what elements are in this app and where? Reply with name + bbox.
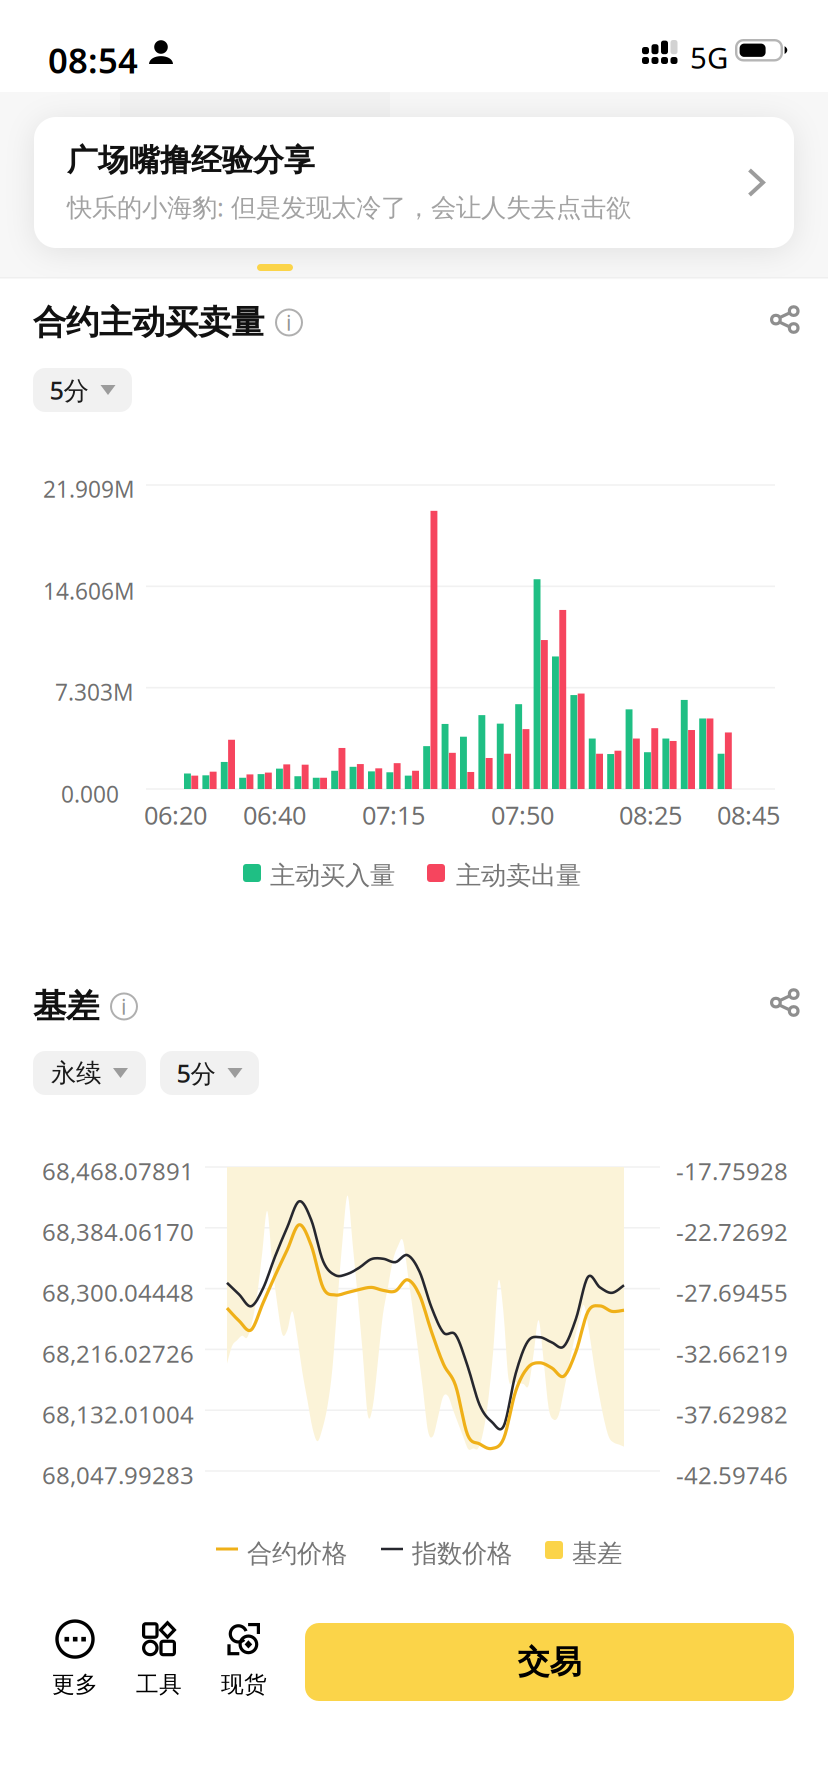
staticText: 主动买入量: [270, 860, 395, 891]
staticText: 68,047.99283: [42, 1459, 194, 1491]
staticText: 5分: [176, 1056, 215, 1090]
button[interactable]: 分享: [771, 988, 800, 1017]
staticText: 快乐的小海豹: 但是发现太冷了，会让人失去点击欲: [67, 190, 631, 224]
staticText: 68,132.01004: [42, 1398, 194, 1430]
staticText: 交易: [517, 1642, 581, 1682]
staticText: -27.69455: [676, 1277, 788, 1308]
staticText: 更多: [52, 1671, 98, 1698]
staticText: 08:25: [619, 798, 682, 832]
staticText: 5分: [49, 373, 88, 407]
staticText: 08:45: [717, 798, 780, 832]
staticText: 广场嘴撸经验分享: [67, 141, 315, 179]
staticText: 合约主动买卖量: [33, 302, 264, 343]
staticText: 5G: [690, 38, 728, 77]
staticText: 21.909M: [43, 474, 135, 504]
staticText: -32.66219: [676, 1337, 788, 1369]
button[interactable]: 交易: [305, 1623, 794, 1701]
staticText: 07:15: [362, 798, 425, 832]
staticText: 06:40: [243, 798, 306, 832]
staticText: -42.59746: [676, 1459, 788, 1491]
button[interactable]: 工具: [131, 1626, 187, 1692]
button[interactable]: 5分: [33, 368, 132, 412]
staticText: 基差: [33, 986, 99, 1027]
button[interactable]: 广场嘴撸经验分享: [34, 117, 794, 248]
staticText: 合约价格: [247, 1538, 347, 1569]
staticText: 现货: [221, 1671, 267, 1698]
staticText: -17.75928: [676, 1155, 788, 1187]
staticText: 基差: [572, 1538, 622, 1569]
staticText: 68,384.06170: [42, 1216, 194, 1248]
staticText: 06:20: [144, 798, 207, 832]
staticText: 主动卖出量: [456, 860, 581, 891]
staticText: -22.72692: [676, 1216, 788, 1248]
button[interactable]: 永续: [33, 1051, 146, 1095]
staticText: 68,216.02726: [42, 1337, 194, 1369]
staticText: 68,468.07891: [42, 1155, 194, 1187]
staticText: 68,300.04448: [42, 1277, 194, 1308]
button[interactable]: 现货: [216, 1626, 272, 1692]
staticText: 指数价格: [412, 1538, 512, 1569]
staticText: 永续: [51, 1057, 101, 1088]
staticText: 08:54: [48, 37, 138, 83]
staticText: 14.606M: [43, 576, 135, 606]
staticText: 工具: [136, 1671, 182, 1698]
button[interactable]: 5分: [160, 1051, 259, 1095]
staticText: -37.62982: [676, 1398, 788, 1430]
button[interactable]: 分享: [771, 305, 800, 334]
staticText: 07:50: [491, 798, 554, 832]
staticText: 7.303M: [55, 677, 134, 707]
staticText: i: [286, 308, 292, 337]
staticText: i: [121, 992, 127, 1021]
button[interactable]: 更多: [47, 1626, 103, 1692]
staticText: 0.000: [61, 779, 119, 809]
